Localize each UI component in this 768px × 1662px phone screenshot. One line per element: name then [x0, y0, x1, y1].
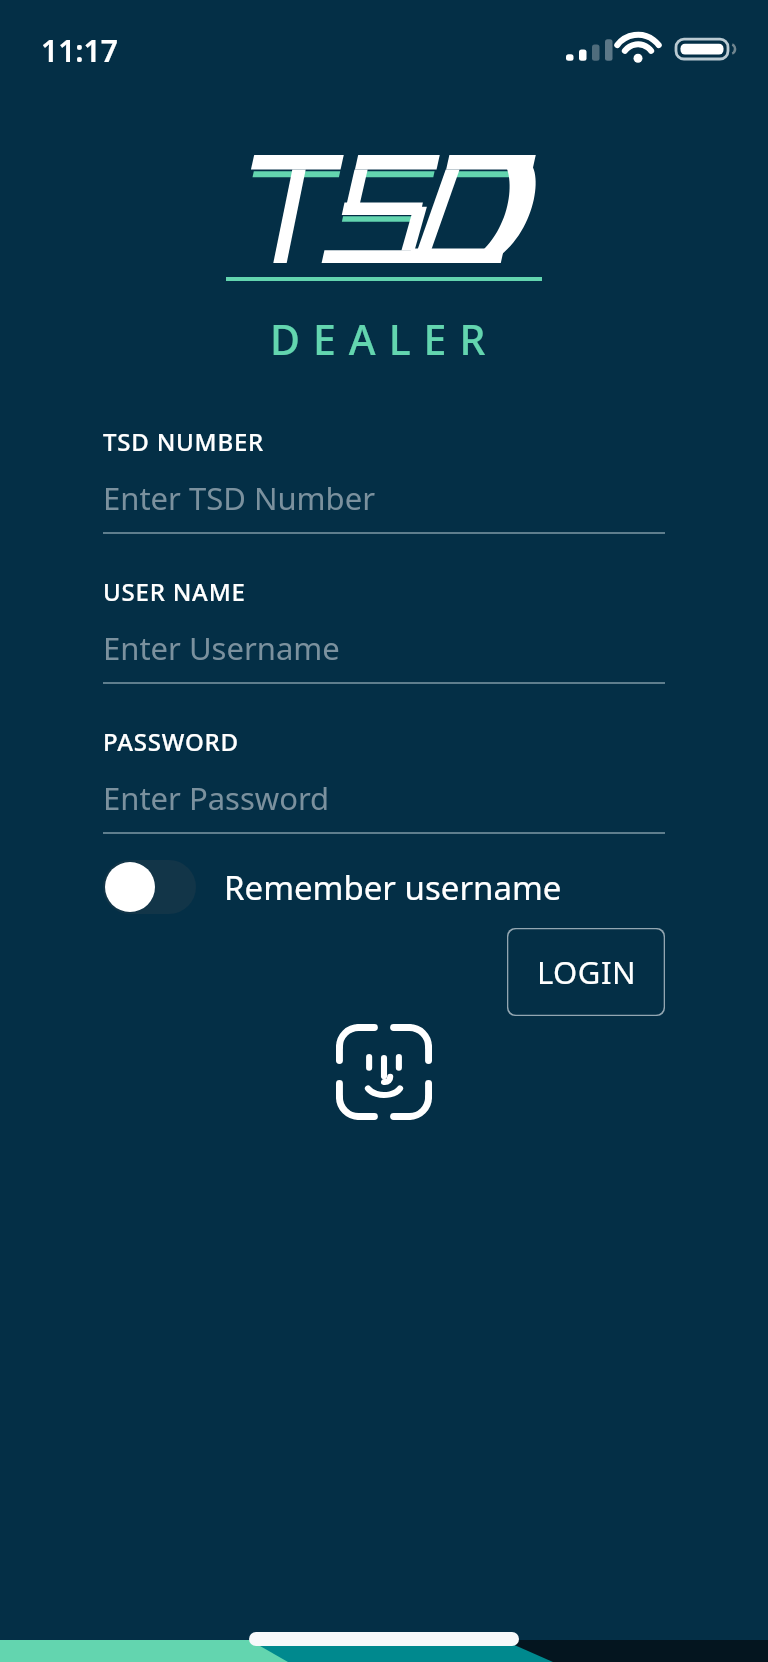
button[interactable]: Enter Password: [103, 776, 665, 820]
staticText: 11:17: [41, 30, 118, 71]
staticText: Remember username: [224, 865, 562, 910]
button[interactable]: Enter TSD Number: [103, 476, 665, 520]
staticText: Enter Password: [103, 777, 330, 819]
staticText: Enter TSD Number: [103, 477, 375, 519]
button[interactable]: Sign in with Face ID: [336, 1024, 432, 1120]
button[interactable]: Remember username toggle: [103, 860, 196, 914]
button[interactable]: LOGIN: [507, 928, 665, 1016]
staticText: LOGIN: [537, 951, 636, 993]
staticText: USER NAME: [103, 575, 246, 608]
staticText: TSD NUMBER: [103, 425, 265, 458]
staticText: Enter Username: [103, 627, 340, 669]
staticText: DEALER: [270, 311, 499, 367]
button[interactable]: Enter Username: [103, 626, 665, 670]
staticText: PASSWORD: [103, 725, 239, 758]
